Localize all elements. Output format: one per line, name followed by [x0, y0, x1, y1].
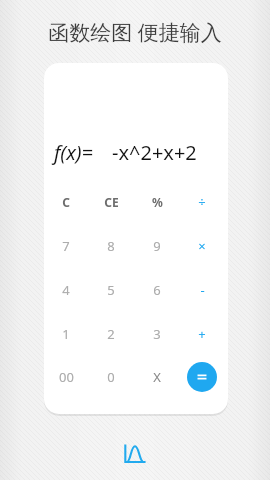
button[interactable]: 5 [90, 273, 132, 307]
button[interactable]: 7 [45, 229, 87, 263]
button[interactable]: 9 [136, 229, 178, 263]
staticText: % [152, 194, 163, 210]
staticText: ÷ [198, 193, 206, 211]
staticText: 3 [153, 325, 161, 343]
staticText: 0 [107, 368, 115, 386]
button[interactable]: f(x)= [44, 139, 228, 166]
staticText: × [198, 237, 206, 255]
button[interactable]: Equals [187, 362, 217, 392]
button[interactable]: % [136, 185, 178, 219]
button[interactable]: ÷ [181, 185, 223, 219]
staticText: 2 [107, 325, 115, 343]
staticText: - [200, 281, 205, 299]
button[interactable]: X [136, 360, 178, 394]
button[interactable]: 00 [45, 360, 87, 394]
staticText: 6 [153, 281, 161, 299]
staticText: 9 [153, 237, 161, 255]
staticText: 4 [62, 281, 70, 299]
button[interactable]: 1 [45, 317, 87, 351]
button[interactable]: 6 [136, 273, 178, 307]
staticText: -x^2+x+2 [112, 139, 197, 166]
staticText: 函数绘图 便捷输入 [48, 18, 222, 47]
button[interactable]: Plot graph [117, 435, 153, 471]
button[interactable]: × [181, 229, 223, 263]
staticText: 1 [62, 325, 70, 343]
button[interactable]: 3 [136, 317, 178, 351]
staticText: + [198, 325, 206, 343]
staticText: 00 [59, 368, 74, 386]
staticText: 7 [62, 237, 70, 255]
button[interactable]: 2 [90, 317, 132, 351]
button[interactable]: CE [90, 185, 132, 219]
staticText: f(x)= [54, 139, 94, 166]
staticText: C [62, 194, 70, 210]
staticText: 8 [107, 237, 115, 255]
button[interactable]: 8 [90, 229, 132, 263]
button[interactable]: 4 [45, 273, 87, 307]
staticText: CE [104, 194, 119, 210]
staticText: X [153, 368, 161, 386]
button[interactable]: + [181, 317, 223, 351]
button[interactable]: - [181, 273, 223, 307]
button[interactable]: C [45, 185, 87, 219]
staticText: 5 [107, 281, 115, 299]
button[interactable]: 0 [90, 360, 132, 394]
